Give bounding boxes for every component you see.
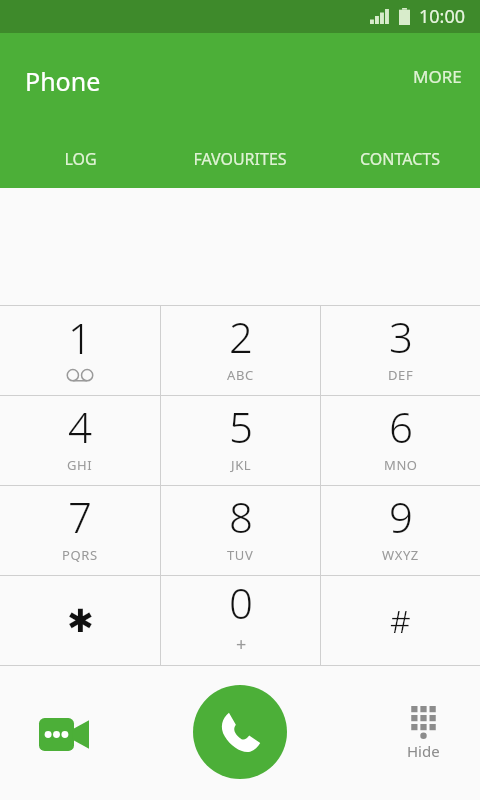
staticText: MORE [413,65,462,88]
button[interactable]: # [321,576,480,665]
staticText: 2 [229,308,253,365]
staticText: 5 [229,398,253,455]
staticText: Hide [407,741,440,761]
button[interactable]: 8 [161,486,320,575]
staticText: 8 [229,488,253,545]
staticText: + [236,632,247,657]
button[interactable]: 7 [0,486,160,575]
button[interactable]: 9 [321,486,480,575]
button[interactable]: 0 [161,576,320,665]
button[interactable]: Hide [393,700,454,767]
staticText: MNO [384,456,418,474]
staticText: TUV [227,546,254,564]
staticText: 7 [68,488,92,545]
staticText: Phone [25,64,101,98]
staticText: LOG [64,148,97,170]
staticText: PQRS [62,546,98,564]
button[interactable]: 2 [161,306,320,395]
staticText: 0 [229,574,253,631]
button[interactable]: Video call [28,698,100,770]
staticText: # [390,599,411,643]
staticText: 10:00 [419,4,466,29]
staticText: JKL [231,456,252,474]
button[interactable]: ✱ [0,576,160,665]
button[interactable]: FAVOURITES [160,130,320,188]
button[interactable]: 1 [0,306,160,395]
staticText: 1 [68,309,92,366]
button[interactable]: 5 [161,396,320,485]
staticText: 9 [389,488,413,545]
staticText: CONTACTS [360,148,440,170]
button[interactable]: 3 [321,306,480,395]
button[interactable]: 4 [0,396,160,485]
staticText: 3 [389,308,413,365]
staticText: GHI [67,456,93,474]
button[interactable]: Call [193,685,287,779]
button[interactable]: CONTACTS [320,130,480,188]
button[interactable]: 6 [321,396,480,485]
staticText: 4 [68,398,92,455]
staticText: ABC [227,366,254,384]
staticText: DEF [388,366,414,384]
button[interactable]: LOG [0,130,160,188]
staticText: 6 [389,398,413,455]
staticText: WXYZ [382,546,419,564]
button[interactable]: MORE [403,57,472,96]
staticText: ✱ [67,602,94,639]
staticText: FAVOURITES [193,148,287,170]
